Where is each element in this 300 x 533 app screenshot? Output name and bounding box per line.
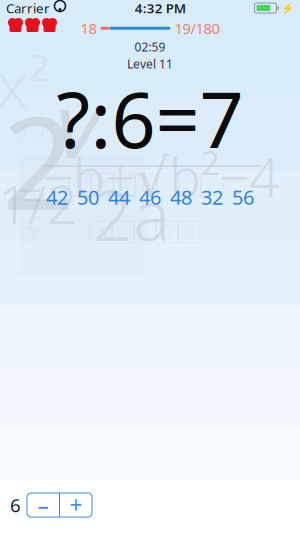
staticText: 𝜈	[59, 85, 105, 176]
staticText: B	[117, 220, 128, 243]
staticText: D	[160, 220, 173, 243]
staticText: 56	[232, 184, 254, 210]
staticText: C	[139, 220, 150, 243]
staticText: D	[183, 173, 196, 196]
staticText: Carrier	[6, 0, 50, 17]
staticText: p	[27, 203, 43, 238]
staticText: 44	[108, 184, 130, 210]
staticText: 2a	[93, 168, 170, 260]
button[interactable]: 44	[103, 184, 134, 210]
staticText: –	[37, 490, 48, 520]
staticText: 18	[80, 18, 96, 38]
button[interactable]: 56	[227, 184, 258, 210]
staticText: 6	[10, 493, 21, 517]
staticText: 32	[201, 184, 223, 210]
button[interactable]: 48	[165, 184, 196, 210]
staticText: +	[69, 490, 82, 520]
staticText: Level 11	[127, 56, 173, 72]
staticText: −b±√b²−4	[43, 141, 279, 212]
staticText: 1/2	[0, 168, 77, 239]
button[interactable]: Decrease	[27, 493, 59, 517]
button[interactable]: 50	[72, 184, 103, 210]
button[interactable]: 42	[41, 184, 72, 210]
staticText: 42	[46, 184, 68, 210]
staticText: A	[95, 220, 106, 243]
staticText: 02:59	[134, 39, 165, 55]
staticText: 48	[170, 184, 192, 210]
staticText: x²	[0, 43, 49, 124]
staticText: PSL(2,Z)	[17, 120, 89, 147]
staticText: ?:6=7	[56, 67, 243, 169]
staticText: Y	[75, 173, 85, 196]
staticText: B	[140, 173, 151, 196]
staticText: 19/180	[174, 18, 219, 38]
staticText: 46	[139, 184, 161, 210]
button[interactable]: Increase	[60, 493, 92, 517]
staticText: Z	[97, 173, 107, 196]
staticText: p	[20, 214, 36, 249]
staticText: =	[17, 164, 43, 224]
staticText: 4:32 PM	[135, 0, 186, 17]
staticText: 2	[2, 75, 75, 245]
button[interactable]: 46	[134, 184, 165, 210]
button[interactable]: 32	[196, 184, 227, 210]
staticText: 50	[77, 184, 99, 210]
staticText: A	[118, 173, 129, 196]
staticText: ⚡	[281, 2, 294, 14]
staticText: C	[162, 173, 173, 196]
staticText: E	[207, 173, 217, 196]
